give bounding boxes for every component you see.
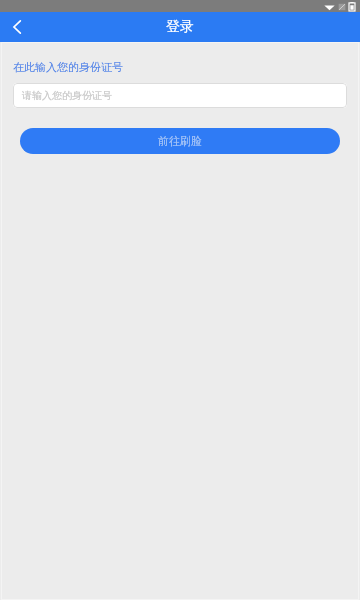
staticText: 登录	[166, 18, 194, 36]
button[interactable]: 请输入您的身份证号	[13, 83, 347, 108]
button[interactable]: 前往刷脸	[20, 128, 340, 154]
staticText: 请输入您的身份证号	[22, 89, 112, 102]
staticText: 在此输入您的身份证号	[13, 60, 123, 74]
button[interactable]: Back	[0, 12, 34, 42]
staticText: 前往刷脸	[158, 134, 202, 148]
